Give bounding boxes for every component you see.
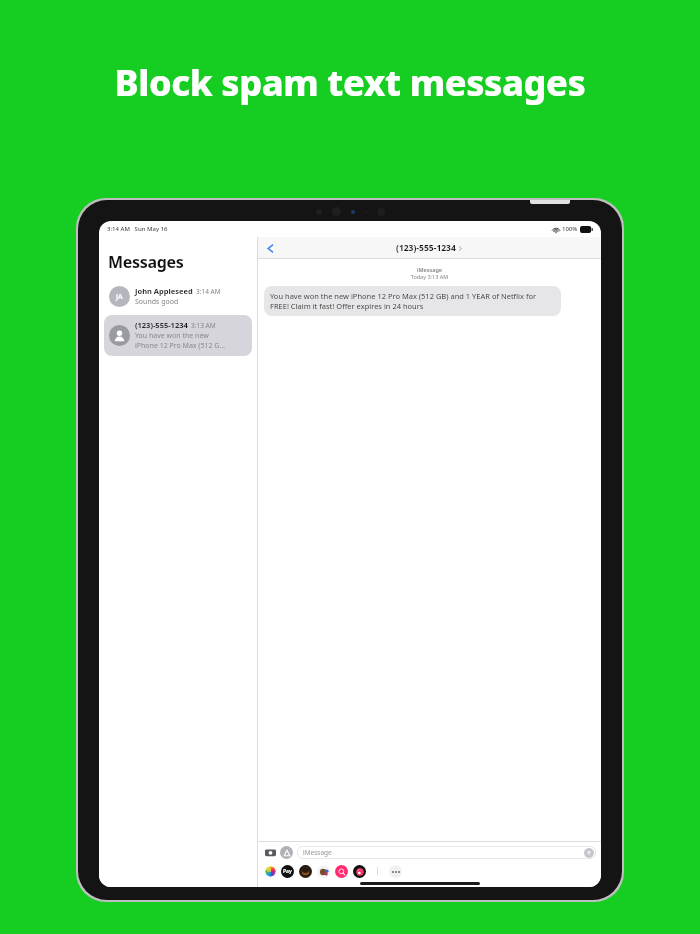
button[interactable]: Back [262, 240, 278, 256]
staticText: You have won the new iPhone 12 Pro Max (… [270, 291, 555, 311]
button[interactable]: More apps [389, 865, 402, 878]
button[interactable]: Memoji sticker [317, 865, 330, 878]
button[interactable]: JA [104, 281, 252, 312]
staticText: (123)-555-1234 [135, 320, 188, 330]
staticText: Messages [108, 251, 184, 273]
button[interactable]: Apple Pay [281, 865, 294, 878]
staticText: (123)-555-1234 [396, 242, 456, 254]
button[interactable]: (123)-555-1234 [396, 242, 463, 254]
staticText: 100% [562, 225, 578, 233]
staticText: You have won the new [135, 331, 209, 341]
staticText: Pay [283, 868, 292, 875]
button[interactable]: App Store [280, 846, 293, 859]
staticText: 3:13 AM [191, 321, 216, 330]
button[interactable]: Send [584, 848, 594, 858]
button[interactable]: iMessage [297, 846, 596, 859]
button[interactable]: You have won the new iPhone 12 Pro Max (… [264, 286, 561, 316]
staticText: 3:14 AM [196, 287, 221, 296]
button[interactable]: Images [335, 865, 348, 878]
staticText: JA [116, 292, 123, 302]
staticText: iPhone 12 Pro Max (512 G… [135, 341, 225, 351]
staticText: John Appleseed [135, 286, 193, 296]
button[interactable]: (123)-555-1234 [104, 315, 252, 356]
button[interactable]: Photos [264, 865, 276, 877]
button[interactable]: Memoji [299, 865, 312, 878]
staticText: 3:14 AM Sun May 16 [107, 225, 168, 233]
staticText: Today 3:13 AM [258, 273, 601, 280]
staticText: Block spam text messages [0, 58, 700, 107]
button[interactable]: Music [353, 865, 366, 878]
staticText: iMessage [258, 266, 601, 273]
staticText: Sounds good [135, 297, 179, 307]
staticText: iMessage [303, 848, 332, 857]
button[interactable]: Camera [263, 845, 277, 859]
